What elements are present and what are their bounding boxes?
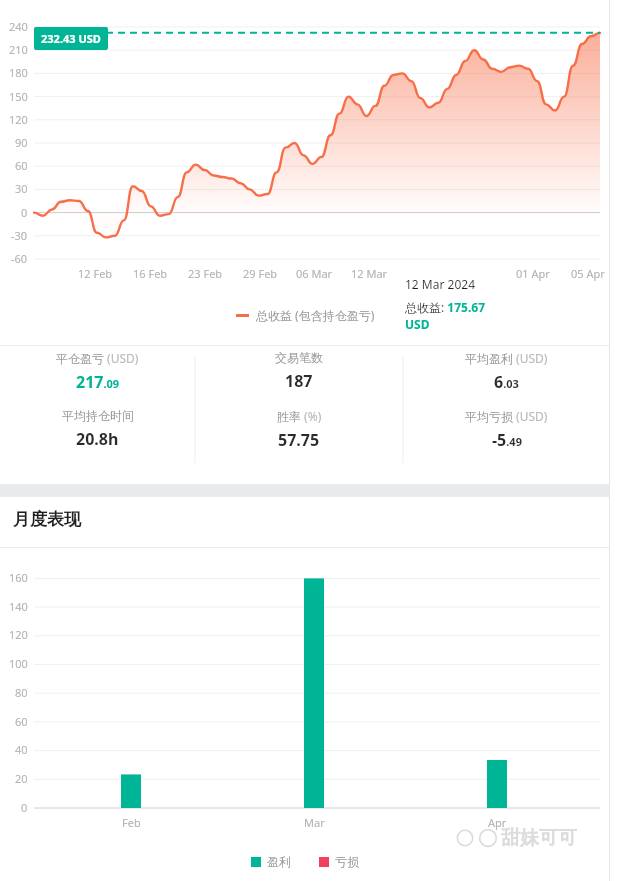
staticText: 平仓盈亏 (USD) [56, 350, 139, 366]
staticText: 180 [9, 65, 28, 80]
staticText: 平均盈利 (USD) [465, 350, 548, 366]
staticText: 187 [285, 370, 313, 392]
button[interactable]: 平仓盈亏 (USD) [0, 345, 195, 397]
staticText: 盈利 [267, 854, 291, 869]
staticText: 6.03 [494, 371, 519, 393]
staticText: 月度表现 [13, 509, 81, 530]
staticText: 210 [9, 42, 28, 57]
button[interactable]: 胜率 (%) [195, 403, 403, 455]
staticText: 150 [9, 89, 28, 104]
staticText: 80 [15, 685, 28, 700]
staticText: 12 Mar 2024 [405, 276, 475, 292]
staticText: 胜率 (%) [277, 408, 322, 424]
staticText: 亏损 [335, 854, 359, 869]
staticText: Feb [122, 815, 141, 830]
staticText: 100 [9, 656, 28, 671]
staticText: 06 Mar [296, 266, 333, 281]
staticText: 交易笔数 [275, 350, 323, 365]
staticText: 57.75 [278, 429, 320, 451]
button[interactable]: 亏损 [316, 851, 362, 872]
button[interactable]: 平均持仓时间 [0, 403, 195, 455]
staticText: 16 Feb [133, 266, 168, 281]
other: Watermark [455, 826, 577, 850]
staticText: -30 [11, 228, 28, 243]
staticText: 60 [15, 158, 28, 173]
button[interactable]: 交易笔数 [195, 345, 403, 397]
staticText: 23 Feb [188, 266, 223, 281]
staticText: 20 [15, 771, 28, 786]
staticText: 217.09 [76, 371, 120, 393]
staticText: 120 [9, 112, 28, 127]
button[interactable]: 月度表现 [13, 509, 81, 530]
staticText: 平均持仓时间 [62, 408, 134, 423]
staticText: 90 [15, 135, 28, 150]
staticText: 12 Feb [78, 266, 113, 281]
staticText: -5.49 [492, 429, 522, 451]
button[interactable]: 232.43 USD [34, 27, 108, 50]
staticText: 232.43 USD [41, 31, 101, 46]
staticText: Mar [304, 815, 325, 830]
staticText: 160 [9, 570, 28, 585]
button[interactable]: 总收益 (包含持仓盈亏) [232, 303, 379, 327]
staticText: 20.8h [76, 428, 119, 450]
staticText: 总收益 (包含持仓盈亏) [256, 307, 375, 323]
staticText: 05 Apr [571, 266, 605, 281]
staticText: 总收益: 175.67 USD [405, 299, 503, 332]
staticText: 01 Apr [516, 266, 550, 281]
staticText: 0 [21, 205, 28, 220]
staticText: 0 [21, 800, 28, 815]
staticText: 29 Feb [243, 266, 278, 281]
staticText: 120 [9, 627, 28, 642]
staticText: 140 [9, 599, 28, 614]
staticText: 40 [15, 742, 28, 757]
staticText: -60 [11, 251, 28, 266]
staticText: 12 Mar [351, 266, 388, 281]
staticText: 甜妹可可 [501, 826, 577, 850]
staticText: Apr [488, 815, 507, 830]
staticText: 60 [15, 714, 28, 729]
staticText: 平均亏损 (USD) [465, 408, 548, 424]
staticText: 240 [9, 19, 28, 34]
button[interactable]: 盈利 [248, 851, 294, 872]
button[interactable]: 12 Mar 2024 [393, 265, 513, 344]
button[interactable]: 平均盈利 (USD) [403, 345, 610, 397]
button[interactable]: 平均亏损 (USD) [403, 403, 610, 455]
staticText: 30 [15, 181, 28, 196]
